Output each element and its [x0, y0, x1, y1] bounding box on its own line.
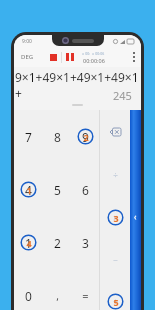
button[interactable]: 6: [71, 163, 99, 216]
staticText: ÷: [113, 169, 118, 180]
button[interactable]: 3: [71, 216, 99, 269]
button[interactable]: 9: [71, 110, 99, 163]
staticText: 9: [82, 129, 89, 145]
staticText: 2: [54, 235, 61, 251]
staticText: 245: [113, 88, 132, 103]
staticText: 00:00:06: [83, 57, 105, 64]
staticText: −: [113, 254, 118, 265]
button[interactable]: 7: [14, 110, 43, 163]
button[interactable]: More options: [127, 47, 141, 67]
staticText: 1: [26, 184, 32, 196]
button[interactable]: 1: [14, 216, 43, 269]
button[interactable]: 5: [43, 163, 71, 216]
staticText: 3: [113, 212, 119, 224]
button[interactable]: 8: [43, 110, 71, 163]
button[interactable]: Pause: [62, 50, 78, 64]
button[interactable]: DEG: [21, 53, 34, 61]
staticText: ×: [113, 212, 118, 223]
button[interactable]: Open panel: [130, 110, 141, 310]
button[interactable]: 2: [43, 216, 71, 269]
button[interactable]: =: [71, 269, 99, 310]
button[interactable]: [72, 104, 83, 106]
staticText: 0: [25, 288, 32, 304]
staticText: 4: [26, 237, 32, 249]
staticText: =: [82, 288, 89, 303]
button[interactable]: ×: [100, 196, 130, 238]
button[interactable]: ,: [43, 269, 71, 310]
button[interactable]: Backspace: [100, 110, 130, 153]
staticText: 6: [82, 182, 89, 198]
staticText: ▫ 00: ▫ 00:06: [82, 51, 105, 56]
button[interactable]: +: [100, 280, 130, 310]
staticText: 7: [25, 129, 32, 145]
button[interactable]: 0: [14, 269, 43, 310]
staticText: 8: [54, 129, 61, 145]
staticText: 5: [113, 296, 119, 308]
button[interactable]: 4: [14, 163, 43, 216]
staticText: 9:00: [22, 38, 32, 45]
staticText: 4: [25, 182, 32, 198]
staticText: ,: [56, 289, 59, 303]
staticText: 2: [83, 131, 89, 143]
staticText: 3: [82, 235, 89, 251]
staticText: 1: [25, 235, 32, 251]
staticText: 9×1+49×1+49×1+49×1+: [15, 69, 141, 101]
button[interactable]: Stop: [45, 50, 61, 64]
staticText: ‹: [134, 211, 137, 222]
staticText: +: [113, 296, 118, 307]
staticText: 5: [54, 182, 61, 198]
